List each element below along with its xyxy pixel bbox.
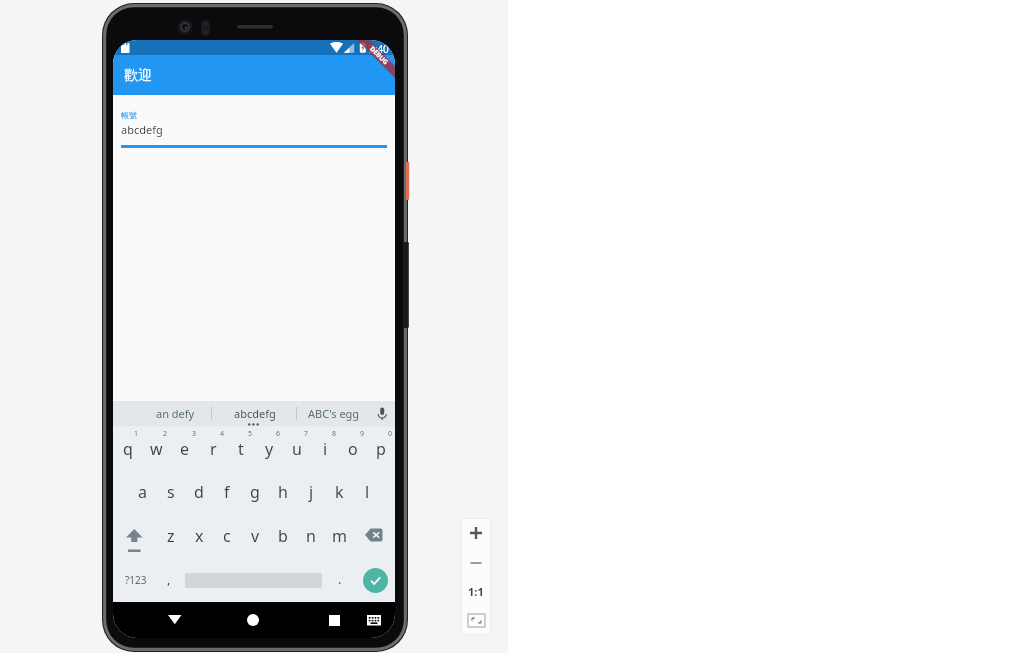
staticText: 3 [192,429,197,439]
button[interactable]: n [297,514,325,558]
staticText: 4 [220,429,225,439]
button[interactable]: m [325,514,353,558]
staticText: , [167,570,171,588]
staticText: t [238,438,244,460]
staticText: c [223,525,231,547]
button[interactable]: Shift [113,514,156,558]
button[interactable]: 7 [283,426,311,470]
staticText: 9 [360,429,365,439]
button[interactable]: . [328,558,352,602]
button[interactable]: Fit to screen [461,606,491,635]
staticText: r [210,438,217,460]
staticText: d [194,481,204,503]
staticText: 帳號 [121,110,137,120]
staticText: ABC's egg [308,406,360,421]
button[interactable]: abcdefg [215,401,295,426]
button[interactable]: Home [233,602,273,638]
button[interactable]: 1 [113,426,142,470]
button[interactable]: 6 [255,426,283,470]
staticText: z [167,525,175,547]
button[interactable]: 2 [142,426,171,470]
button[interactable]: Zoom out [461,548,491,577]
button[interactable]: z [156,514,185,558]
staticText: DEBUG [368,44,391,67]
button[interactable]: g [241,470,269,514]
button[interactable]: 0 [367,426,395,470]
button[interactable]: f [213,470,241,514]
staticText: g [250,481,260,503]
button[interactable]: , [157,558,181,602]
button[interactable]: l [353,470,381,514]
button[interactable]: 3 [171,426,199,470]
button[interactable]: 5 [227,426,255,470]
staticText: m [332,525,347,547]
button[interactable]: c [213,514,241,558]
staticText: 5 [248,429,253,439]
button[interactable]: Recents [314,602,354,638]
staticText: k [335,481,344,503]
staticText: abcdefg [121,122,163,137]
staticText: 1 [134,429,139,439]
staticText: o [348,438,358,460]
button[interactable]: ?123 [122,558,149,602]
staticText: 歡迎 [124,67,152,85]
staticText: e [180,438,190,460]
staticText: q [123,438,133,460]
staticText: u [292,438,302,460]
button[interactable]: Voice input [368,401,395,426]
staticText: f [224,481,230,503]
staticText: 0 [388,429,393,439]
staticText: p [376,438,386,460]
button[interactable]: Enter [356,558,394,602]
staticText: l [365,481,370,503]
staticText: j [309,481,314,503]
staticText: n [306,525,316,547]
staticText: 6 [276,429,281,439]
staticText: b [278,525,288,547]
staticText: ?123 [125,573,147,587]
button[interactable]: ABC's egg [296,401,372,426]
staticText: h [278,481,288,503]
button[interactable]: s [157,470,185,514]
button[interactable]: 4 [199,426,227,470]
button[interactable]: b [269,514,297,558]
button[interactable] [182,558,324,602]
button[interactable]: Zoom in [461,518,491,548]
staticText: 3:40 [369,42,389,56]
staticText: . [338,570,342,588]
button[interactable]: j [297,470,325,514]
staticText: 1:1 [468,584,484,599]
button[interactable]: d [185,470,213,514]
button[interactable]: 1:1 [461,577,491,606]
staticText: an defy [156,406,195,421]
staticText: 7 [304,429,309,439]
button[interactable]: Backspace [353,514,395,558]
button[interactable]: h [269,470,297,514]
staticText: 2 [163,429,168,439]
button[interactable]: v [241,514,269,558]
button[interactable]: a [128,470,157,514]
button[interactable]: 8 [311,426,339,470]
staticText: i [323,438,328,460]
staticText: s [167,481,175,503]
staticText: 8 [332,429,337,439]
button[interactable]: an defy [135,401,215,426]
button[interactable]: x [185,514,213,558]
staticText: v [251,525,260,547]
button[interactable]: Back [155,602,195,638]
button[interactable]: k [325,470,353,514]
staticText: x [195,525,204,547]
button[interactable]: 9 [339,426,367,470]
staticText: y [265,438,274,460]
staticText: a [138,481,147,503]
staticText: abcdefg [234,406,276,421]
button[interactable]: Keyboard [356,602,392,638]
staticText: w [150,438,163,460]
